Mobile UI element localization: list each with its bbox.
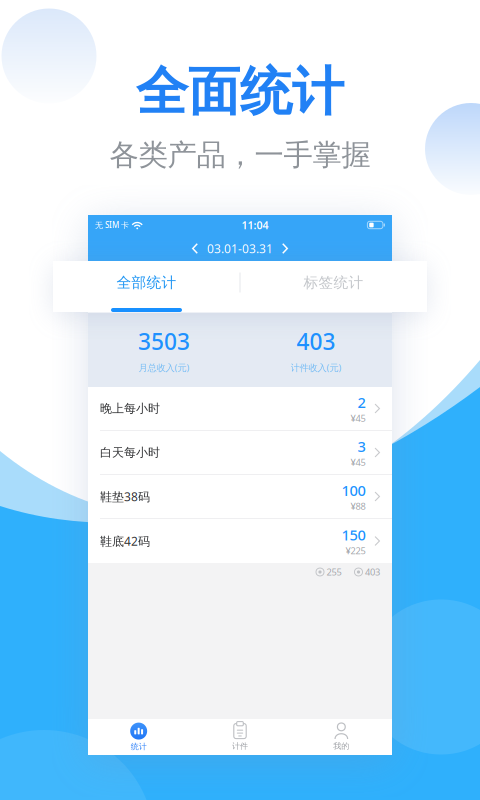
staticText: ¥225 xyxy=(345,544,365,557)
staticText: 标签统计 xyxy=(303,273,363,291)
button[interactable]: Previous period xyxy=(186,238,204,259)
staticText: 全部统计 xyxy=(116,273,176,291)
staticText: 150 xyxy=(341,525,365,545)
button[interactable]: 鞋底42码 xyxy=(88,519,392,563)
button[interactable]: 统计 xyxy=(88,723,189,751)
staticText: 晚上每小时 xyxy=(100,401,160,416)
staticText: ¥45 xyxy=(350,412,365,424)
staticText: 03.01-03.31 xyxy=(207,240,273,256)
button[interactable]: 全部统计 xyxy=(53,261,240,312)
staticText: 全面统计 xyxy=(136,60,344,124)
staticText: 403 xyxy=(296,326,335,356)
staticText: 100 xyxy=(341,481,365,500)
staticText: 无 SIM 卡 xyxy=(95,220,129,230)
button[interactable]: 鞋垫38码 xyxy=(88,475,392,519)
button[interactable]: 晚上每小时 xyxy=(88,387,392,431)
staticText: ¥88 xyxy=(350,500,365,512)
staticText: 2 xyxy=(357,393,365,412)
staticText: 鞋垫38码 xyxy=(100,488,150,504)
staticText: 各类产品，一手掌握 xyxy=(109,137,370,173)
staticText: 计件 xyxy=(232,741,248,751)
staticText: 鞋底42码 xyxy=(100,533,150,549)
staticText: 计件收入(元) xyxy=(290,361,341,374)
staticText: 11:04 xyxy=(241,218,268,232)
button[interactable]: 白天每小时 xyxy=(88,431,392,475)
staticText: 白天每小时 xyxy=(100,445,160,460)
staticText: 3503 xyxy=(138,326,190,356)
staticText: 403 xyxy=(365,566,380,578)
button[interactable]: 标签统计 xyxy=(240,261,427,312)
staticText: ¥45 xyxy=(350,456,365,468)
button[interactable]: 我的 xyxy=(291,723,392,751)
button[interactable]: 计件 xyxy=(189,723,291,751)
staticText: 统计 xyxy=(131,742,147,751)
staticText: 月总收入(元) xyxy=(138,361,189,374)
staticText: 我的 xyxy=(333,741,349,751)
button[interactable]: Next period xyxy=(276,238,294,259)
staticText: 255 xyxy=(326,566,341,578)
staticText: 3 xyxy=(357,437,365,456)
